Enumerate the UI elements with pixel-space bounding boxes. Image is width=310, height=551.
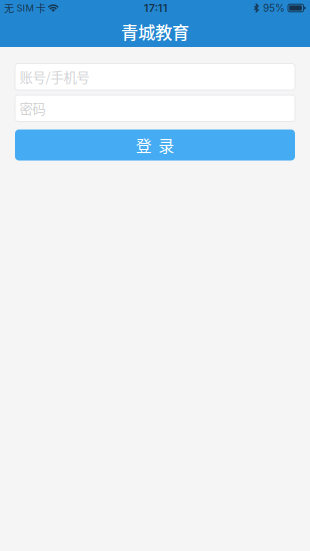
staticText: 卡 (36, 1, 46, 15)
staticText: 录 (158, 133, 174, 157)
button[interactable]: 账号/手机号 (15, 63, 295, 90)
staticText: 账号/手机号 (19, 67, 89, 86)
button[interactable]: 密码 (15, 95, 295, 121)
staticText: 密码 (19, 99, 45, 118)
staticText: 无 (4, 1, 14, 15)
button[interactable]: 登 (15, 129, 295, 160)
staticText: 登 (136, 133, 152, 157)
staticText: 青城教育 (121, 19, 189, 44)
staticText: SIM (16, 2, 33, 14)
staticText: 17:11 (144, 1, 168, 15)
staticText: 95% (263, 2, 285, 14)
